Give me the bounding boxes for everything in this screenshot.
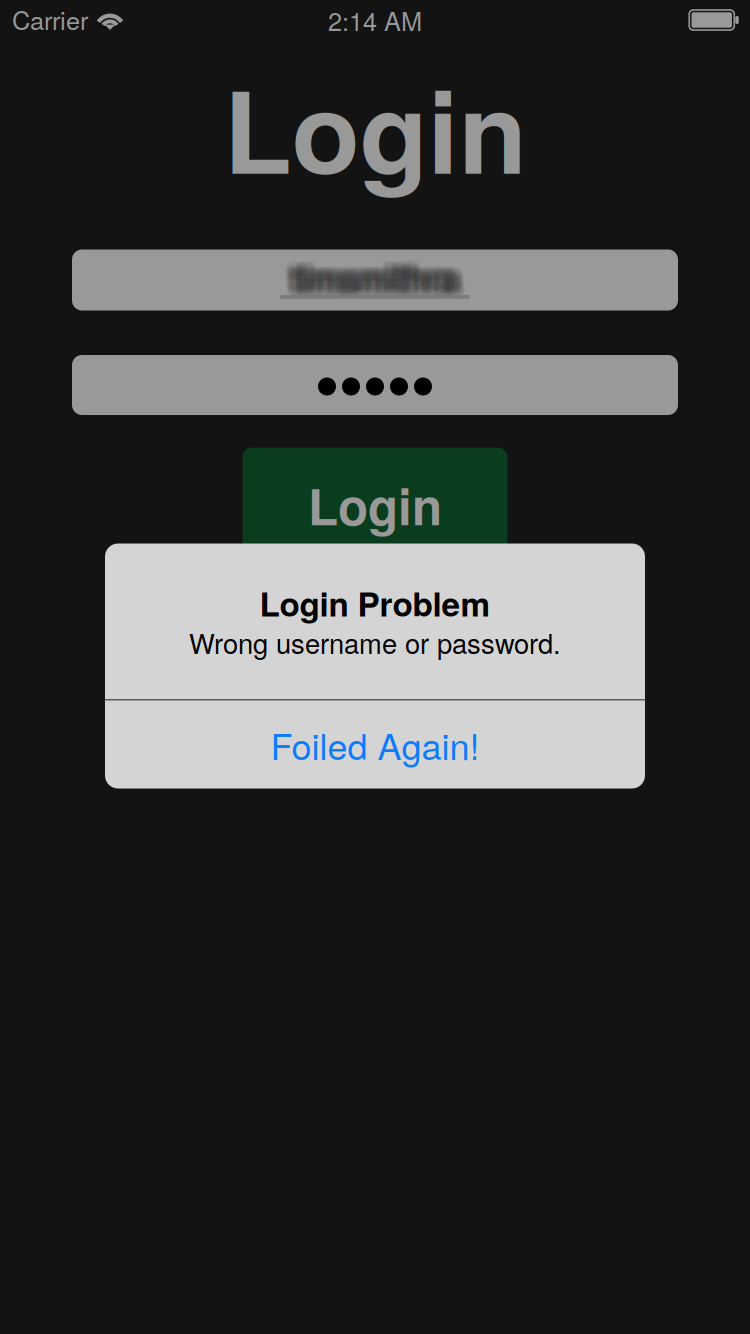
staticText: timsmithra [283, 253, 449, 305]
staticText: timsmithra [290, 247, 456, 299]
staticText: timsmithra [290, 253, 456, 305]
staticText: timsmithra [286, 247, 452, 299]
staticText: timsmithra [301, 244, 467, 296]
staticText: timsmithra [284, 246, 450, 297]
staticText: timsmithra [292, 249, 458, 300]
staticText: timsmithra [286, 255, 452, 306]
staticText: timsmithra [286, 246, 452, 297]
staticText: timsmithra [283, 249, 449, 300]
staticText: timsmithra [288, 255, 454, 306]
staticText: timsmithra [299, 252, 465, 303]
staticText: timsmithra [285, 255, 451, 306]
staticText: timsmithra [301, 246, 467, 297]
staticText: timsmithra [286, 252, 452, 303]
staticText: timsmithra [286, 249, 452, 300]
staticText: timsmithra [293, 246, 459, 297]
staticText: timsmithra [299, 253, 465, 305]
staticText: timsmithra [283, 256, 449, 308]
staticText: timsmithra [285, 256, 451, 308]
staticText: timsmithra [283, 250, 449, 302]
staticText: Foiled Again! [270, 719, 479, 770]
staticText: timsmithra [291, 256, 457, 308]
staticText: timsmithra [291, 252, 457, 303]
staticText: timsmithra [300, 253, 466, 305]
staticText: timsmithra [297, 256, 463, 308]
staticText: timsmithra [296, 249, 462, 300]
staticText: timsmithra [297, 250, 463, 302]
staticText: timsmithra [284, 255, 450, 306]
staticText: timsmithra [284, 247, 450, 299]
staticText: timsmithra [301, 252, 467, 303]
staticText: timsmithra [293, 255, 459, 306]
staticText: timsmithra [293, 250, 459, 302]
staticText: timsmithra [290, 256, 456, 308]
staticText: timsmithra [297, 246, 463, 297]
staticText: timsmithra [284, 249, 450, 300]
staticText: timsmithra [289, 253, 455, 305]
staticText: timsmithra [295, 255, 461, 306]
staticText: timsmithra [294, 250, 460, 302]
staticText: timsmithra [295, 249, 461, 300]
staticText: timsmithra [289, 255, 455, 306]
staticText: timsmithra [291, 246, 457, 297]
staticText: timsmithra [286, 253, 452, 305]
staticText: Login [308, 470, 442, 540]
staticText: timsmithra [299, 249, 465, 300]
staticText: timsmithra [295, 244, 461, 296]
staticText: timsmithra [286, 244, 452, 296]
staticText: timsmithra [301, 255, 467, 306]
staticText: timsmithra [300, 246, 466, 297]
staticText: timsmithra [301, 253, 467, 305]
staticText: timsmithra [291, 247, 457, 299]
staticText: timsmithra [292, 246, 458, 297]
staticText: timsmithra [296, 247, 462, 299]
staticText: timsmithra [294, 252, 460, 303]
staticText: timsmithra [290, 244, 456, 296]
staticText: timsmithra [295, 253, 461, 305]
staticText: timsmithra [296, 246, 462, 297]
button[interactable]: Foiled Again! [105, 700, 645, 788]
staticText: timsmithra [283, 247, 449, 299]
staticText: timsmithra [284, 244, 450, 296]
staticText: timsmithra [296, 253, 462, 305]
staticText: timsmithra [291, 253, 457, 305]
button[interactable]: Login [242, 447, 507, 562]
staticText: timsmithra [297, 249, 463, 300]
staticText: timsmithra [290, 255, 456, 306]
staticText: timsmithra [288, 250, 454, 302]
staticText: timsmithra [300, 247, 466, 299]
staticText: timsmithra [296, 255, 462, 306]
staticText: timsmithra [300, 244, 466, 296]
staticText: timsmithra [289, 247, 455, 299]
staticText: timsmithra [293, 256, 459, 308]
staticText: timsmithra [288, 252, 454, 303]
staticText: timsmithra [289, 249, 455, 300]
staticText: timsmithra [293, 252, 459, 303]
staticText: timsmithra [301, 250, 467, 302]
staticText: timsmithra [300, 249, 466, 300]
staticText: timsmithra [288, 253, 454, 305]
staticText: timsmithra [299, 250, 465, 302]
staticText: timsmithra [294, 247, 460, 299]
staticText: timsmithra [293, 253, 459, 305]
staticText: timsmithra [283, 246, 449, 297]
staticText: timsmithra [295, 256, 461, 308]
staticText: timsmithra [288, 247, 454, 299]
staticText: Wrong username or password. [189, 623, 561, 662]
staticText: timsmithra [300, 256, 466, 308]
staticText: timsmithra [291, 255, 457, 306]
staticText: timsmithra [297, 255, 463, 306]
staticText: timsmithra [297, 247, 463, 299]
staticText: timsmithra [289, 246, 455, 297]
staticText: timsmithra [285, 247, 451, 299]
staticText: timsmithra [300, 252, 466, 303]
staticText: timsmithra [299, 255, 465, 306]
staticText: timsmithra [296, 252, 462, 303]
staticText: timsmithra [301, 256, 467, 308]
staticText: timsmithra [297, 253, 463, 305]
staticText: timsmithra [295, 252, 461, 303]
staticText: timsmithra [288, 246, 454, 297]
staticText: timsmithra [285, 253, 451, 305]
staticText: timsmithra [292, 255, 458, 306]
staticText: timsmithra [294, 246, 460, 297]
